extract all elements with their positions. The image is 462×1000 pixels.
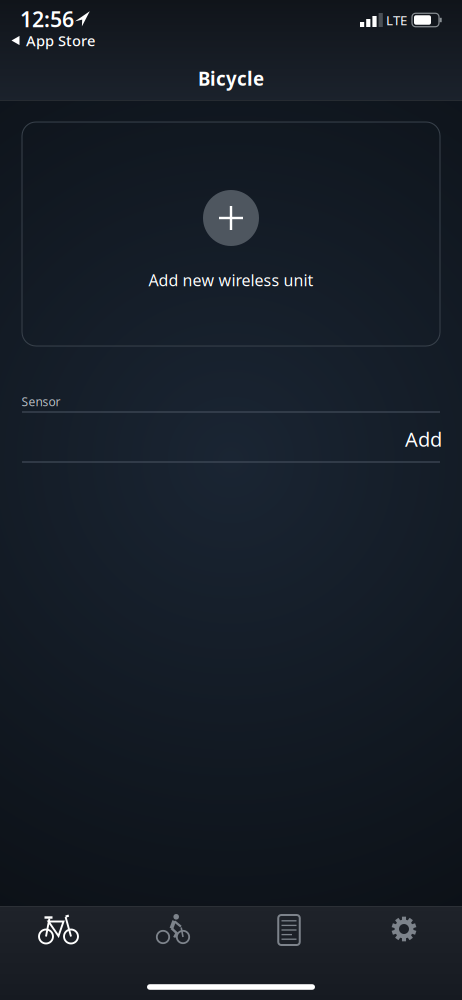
button[interactable]: Bicycle xyxy=(29,906,87,954)
button[interactable]: Log xyxy=(260,906,318,954)
staticText: Add new wireless unit xyxy=(148,269,313,291)
staticText: 12:56 xyxy=(20,5,74,33)
staticText: Add xyxy=(405,426,442,452)
staticText: Bicycle xyxy=(198,66,264,91)
button[interactable]: Settings xyxy=(375,906,433,954)
button[interactable]: Add new wireless unit xyxy=(22,122,440,346)
staticText: Sensor xyxy=(21,393,60,409)
button[interactable]: Back to App Store xyxy=(11,31,95,50)
button[interactable]: Add xyxy=(393,424,453,454)
staticText: LTE xyxy=(386,11,407,29)
staticText: App Store xyxy=(26,31,95,50)
button[interactable]: Ride xyxy=(144,906,202,954)
